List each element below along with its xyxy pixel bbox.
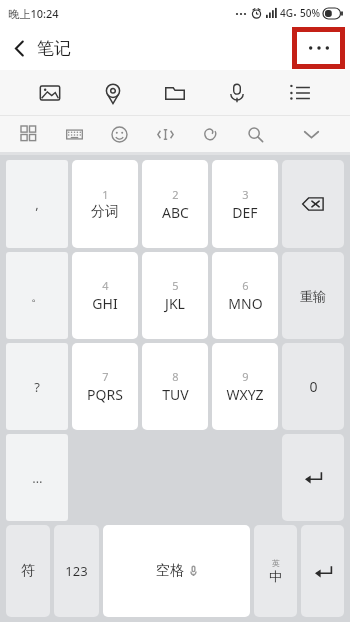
button[interactable]: Folder: [153, 71, 197, 115]
staticText: 2: [172, 187, 179, 202]
staticText: 重输: [300, 288, 326, 304]
staticText: 7: [102, 369, 109, 384]
staticText: ,: [35, 195, 39, 213]
button[interactable]: Switch language: [254, 525, 297, 617]
staticText: 4: [102, 278, 109, 293]
staticText: 晚上10:24: [8, 6, 59, 21]
button[interactable]: 1: [72, 160, 138, 248]
button[interactable]: Hide keyboard: [294, 117, 328, 151]
button[interactable]: 符: [6, 525, 50, 617]
button[interactable]: 8: [142, 343, 208, 430]
staticText: 1: [102, 187, 109, 202]
staticText: 4G: [280, 6, 293, 20]
staticText: 50%: [300, 6, 320, 20]
button[interactable]: 3: [212, 160, 278, 248]
staticText: PQRS: [87, 385, 123, 404]
staticText: TUV: [162, 385, 189, 404]
button[interactable]: 0: [282, 343, 344, 430]
staticText: 分词: [91, 203, 119, 221]
button[interactable]: 7: [72, 343, 138, 430]
button[interactable]: 重输: [282, 252, 344, 339]
button[interactable]: List: [278, 71, 322, 115]
staticText: DEF: [232, 203, 258, 222]
button[interactable]: Search: [238, 117, 272, 151]
button[interactable]: Enter: [301, 525, 344, 617]
button[interactable]: 123: [54, 525, 99, 617]
button[interactable]: 4: [72, 252, 138, 339]
other: Back: [12, 39, 27, 58]
staticText: MNO: [228, 294, 263, 313]
staticText: 笔记: [37, 38, 71, 59]
button[interactable]: Delete: [282, 160, 344, 248]
button[interactable]: 空格: [103, 525, 250, 617]
button[interactable]: Enter: [282, 434, 344, 521]
button[interactable]: 2: [142, 160, 208, 248]
staticText: …: [32, 469, 43, 487]
staticText: 3: [242, 187, 249, 202]
button[interactable]: 9: [212, 343, 278, 430]
button[interactable]: …: [6, 434, 68, 521]
button[interactable]: Edit text: [148, 117, 182, 151]
staticText: ABC: [162, 203, 189, 222]
button[interactable]: 5: [142, 252, 208, 339]
button[interactable]: More options: [297, 32, 340, 64]
staticText: 6: [242, 278, 249, 293]
staticText: 123: [65, 562, 88, 580]
staticText: ?: [34, 378, 40, 396]
button[interactable]: Attach: [193, 117, 227, 151]
button[interactable]: Emoji: [102, 117, 136, 151]
button[interactable]: Keyboard: [57, 117, 91, 151]
staticText: JKL: [165, 294, 185, 313]
staticText: GHI: [92, 294, 118, 313]
staticText: 空格: [156, 562, 184, 580]
button[interactable]: ,: [6, 160, 68, 248]
button[interactable]: Apps: [12, 117, 46, 151]
staticText: 符: [21, 562, 35, 580]
button[interactable]: Voice input: [215, 71, 259, 115]
button[interactable]: 6: [212, 252, 278, 339]
button[interactable]: Insert image: [28, 71, 72, 115]
staticText: 0: [309, 377, 318, 396]
button[interactable]: Location: [91, 71, 135, 115]
staticText: WXYZ: [226, 385, 264, 404]
staticText: 8: [172, 369, 179, 384]
staticText: 。: [31, 288, 44, 304]
staticText: 9: [242, 369, 249, 384]
staticText: 中: [269, 568, 282, 584]
button[interactable]: ?: [6, 343, 68, 430]
staticText: 5: [172, 278, 179, 293]
button[interactable]: Back: [0, 32, 79, 65]
staticText: 英: [272, 558, 280, 568]
